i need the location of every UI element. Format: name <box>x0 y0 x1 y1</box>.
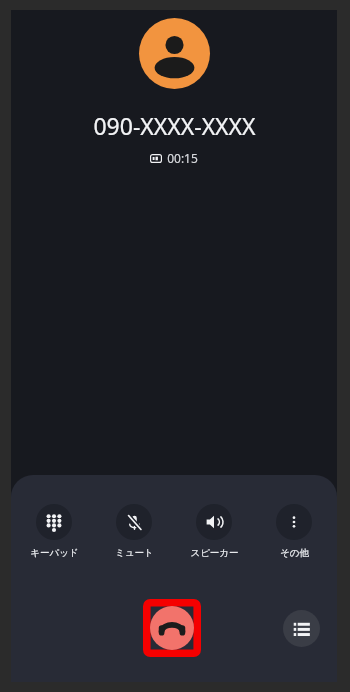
button[interactable]: Mute <box>97 504 171 559</box>
button[interactable]: Call details list <box>283 610 320 647</box>
staticText: キーパッド <box>30 547 79 559</box>
staticText: ミュート <box>115 547 154 559</box>
staticText: 00:15 <box>167 150 198 166</box>
staticText: その他 <box>280 547 309 559</box>
button[interactable]: More options <box>257 504 331 559</box>
staticText: 090-XXXX-XXXX <box>93 110 256 141</box>
button[interactable]: Keypad <box>17 504 91 559</box>
button[interactable]: End call <box>139 595 205 661</box>
button[interactable]: Speaker <box>177 504 251 559</box>
staticText: スピーカー <box>190 547 239 559</box>
